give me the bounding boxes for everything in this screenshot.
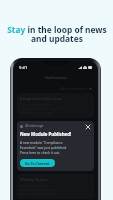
button[interactable]: Go To Content	[20, 159, 55, 167]
button[interactable]: Assignment Due Soon	[17, 93, 94, 118]
staticText: Weekly Digest	[20, 177, 48, 182]
button[interactable]: 45 mins ago	[17, 121, 94, 171]
staticText: New Module Published!	[20, 131, 72, 137]
button[interactable]: Dismiss notification	[85, 124, 91, 130]
staticText: 9:41	[19, 65, 28, 71]
staticText: All notifications	[61, 86, 87, 91]
button[interactable]: All notifications	[60, 85, 93, 92]
staticText: 45 mins ago	[25, 124, 44, 128]
staticText: A new module "Compliance Essentials" was…	[20, 140, 71, 155]
staticText: Assignment Due Soon	[20, 96, 63, 101]
staticText: Go To Content	[25, 161, 50, 166]
staticText: Notifications	[45, 75, 67, 80]
staticText: Stay in the loop of news and updates	[7, 24, 107, 44]
